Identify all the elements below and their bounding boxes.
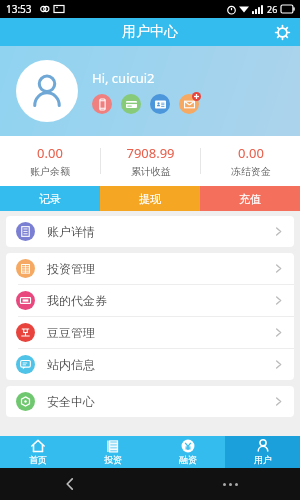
button[interactable]: Avatar	[16, 60, 78, 122]
staticText: 冻结资金	[231, 165, 271, 178]
button[interactable]: Settings	[271, 21, 293, 43]
staticText: 13:53	[6, 2, 32, 16]
staticText: 用户中心	[122, 23, 178, 41]
button[interactable]: 用户	[225, 436, 300, 468]
button[interactable]: 豆豆管理	[6, 317, 294, 348]
button[interactable]: 投资	[75, 436, 150, 468]
button[interactable]: Phone	[92, 94, 112, 114]
staticText: 投资管理	[47, 261, 95, 276]
button[interactable]: 7908.99	[101, 144, 200, 178]
button[interactable]: 提现	[100, 186, 200, 211]
staticText: 充值	[239, 192, 261, 206]
staticText: 记录	[39, 192, 61, 206]
staticText: 安全中心	[47, 394, 95, 409]
button[interactable]: 安全中心	[6, 386, 294, 417]
staticText: 26	[267, 3, 278, 15]
button[interactable]: 0.00	[0, 144, 100, 178]
staticText: 0.00	[37, 144, 63, 162]
staticText: 账户详情	[47, 224, 95, 239]
staticText: 首页	[29, 454, 47, 465]
button[interactable]: Bank card	[121, 94, 141, 114]
button[interactable]: Email	[179, 94, 199, 114]
staticText: 我的代金券	[47, 293, 107, 308]
staticText: 融资	[179, 454, 197, 465]
button[interactable]: 首页	[0, 436, 75, 468]
button[interactable]: 充值	[200, 186, 300, 211]
staticText: 站内信息	[47, 357, 95, 372]
staticText: 0.00	[238, 144, 264, 162]
button[interactable]: 记录	[0, 186, 100, 211]
staticText: 用户	[254, 454, 272, 465]
button[interactable]: 融资	[150, 436, 225, 468]
button[interactable]: ID card	[150, 94, 170, 114]
staticText: Hi, cuicui2	[92, 69, 155, 87]
staticText: 累计收益	[131, 165, 171, 178]
button[interactable]: 0.00	[201, 144, 300, 178]
button[interactable]: 账户详情	[6, 216, 294, 247]
button[interactable]: 投资管理	[6, 253, 294, 284]
staticText: 7908.99	[126, 144, 175, 162]
button[interactable]: 站内信息	[6, 349, 294, 380]
staticText: 提现	[139, 192, 161, 206]
button[interactable]: 我的代金券	[6, 285, 294, 316]
staticText: 豆豆管理	[47, 325, 95, 340]
staticText: 投资	[104, 454, 122, 465]
staticText: 账户余额	[30, 165, 70, 178]
